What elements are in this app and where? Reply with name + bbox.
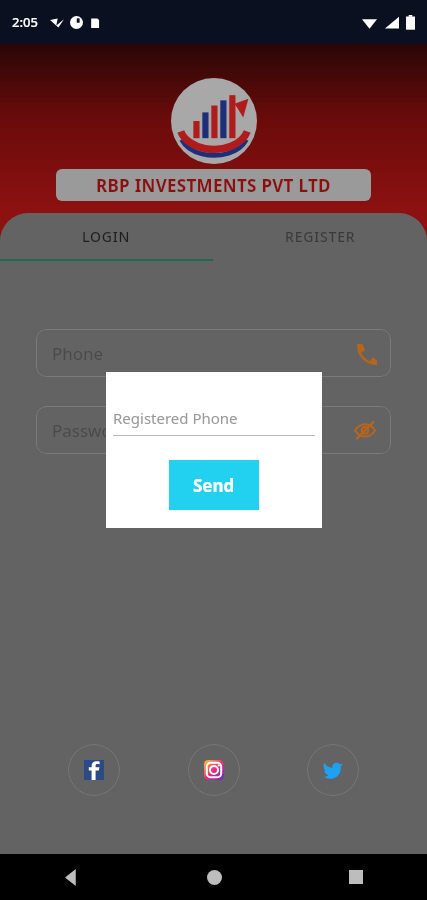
button[interactable]: Phone — [36, 329, 391, 377]
button[interactable]: Forgot Password — [150, 476, 277, 504]
staticText: RBP INVESTMENTS PVT LTD — [96, 174, 331, 197]
staticText: Registered Phone — [113, 408, 238, 428]
staticText: 2:05 — [12, 13, 38, 31]
staticText: Forgot Password — [154, 480, 273, 500]
staticText: Phone — [52, 342, 104, 365]
button[interactable]: Back — [0, 854, 143, 900]
button[interactable]: Instagram — [188, 744, 240, 796]
button[interactable]: Password — [36, 406, 391, 454]
button[interactable]: LOGIN — [0, 213, 213, 259]
staticText: Send — [193, 474, 235, 497]
button[interactable]: Send — [169, 460, 259, 510]
button[interactable]: REGISTER — [213, 213, 427, 259]
staticText: REGISTER — [285, 227, 356, 246]
button[interactable]: Recent apps — [285, 854, 427, 900]
button[interactable]: Facebook — [68, 744, 120, 796]
staticText: Password — [52, 419, 129, 442]
button[interactable]: Twitter — [307, 744, 359, 796]
button[interactable]: Home — [143, 854, 285, 900]
staticText: LOGIN — [82, 227, 131, 246]
